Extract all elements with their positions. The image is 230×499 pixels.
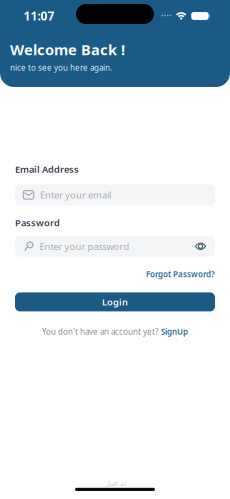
staticText: 11:07 (23, 8, 54, 24)
staticText: Email Address (15, 163, 79, 175)
staticText: Password (15, 216, 60, 229)
button[interactable]: SignUp (161, 326, 188, 337)
staticText: Enter your password (39, 240, 129, 252)
staticText: nice to see you here again. (10, 62, 112, 73)
staticText: لة الحل (104, 480, 125, 488)
button[interactable]: Forgot Password? (146, 269, 215, 279)
staticText: Forgot Password? (146, 269, 215, 279)
staticText: Welcome Back ! (10, 40, 125, 59)
staticText: Login (102, 296, 128, 308)
staticText: Enter your email (40, 189, 111, 201)
button[interactable]: Login (15, 292, 215, 311)
button[interactable]: Enter your email (15, 184, 215, 205)
staticText: You don't have an account yet? (42, 326, 158, 337)
staticText: SignUp (161, 326, 188, 337)
button[interactable]: Enter your password (15, 236, 215, 257)
